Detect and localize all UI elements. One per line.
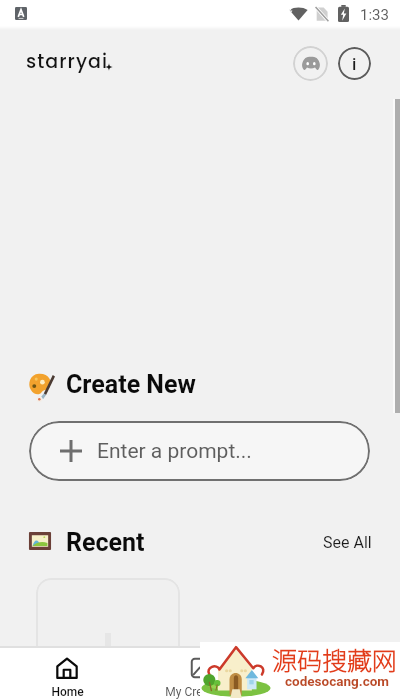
staticText: starryai [26,48,109,75]
staticText: i [352,54,357,74]
button[interactable]: My Creations [134,648,267,700]
staticText: Create New [66,370,196,399]
button[interactable]: Discord community [293,46,328,81]
staticText: Enter a prompt... [97,439,252,464]
button[interactable]: Profile [267,648,400,700]
staticText: My Creations [165,685,236,699]
staticText: 源码搜藏网 [272,641,398,677]
button[interactable]: Home [0,648,134,700]
button[interactable]: Enter a prompt... [29,421,370,481]
button[interactable]: Info [338,47,371,80]
staticText: See All [323,533,372,552]
button[interactable] [36,578,180,700]
staticText: codesocang.com [285,673,390,689]
button[interactable]: See All [323,533,372,552]
staticText: Recent [66,528,145,557]
staticText: Home [51,685,84,699]
staticText: Profile [316,685,351,699]
staticText: 1:33 [360,6,389,24]
